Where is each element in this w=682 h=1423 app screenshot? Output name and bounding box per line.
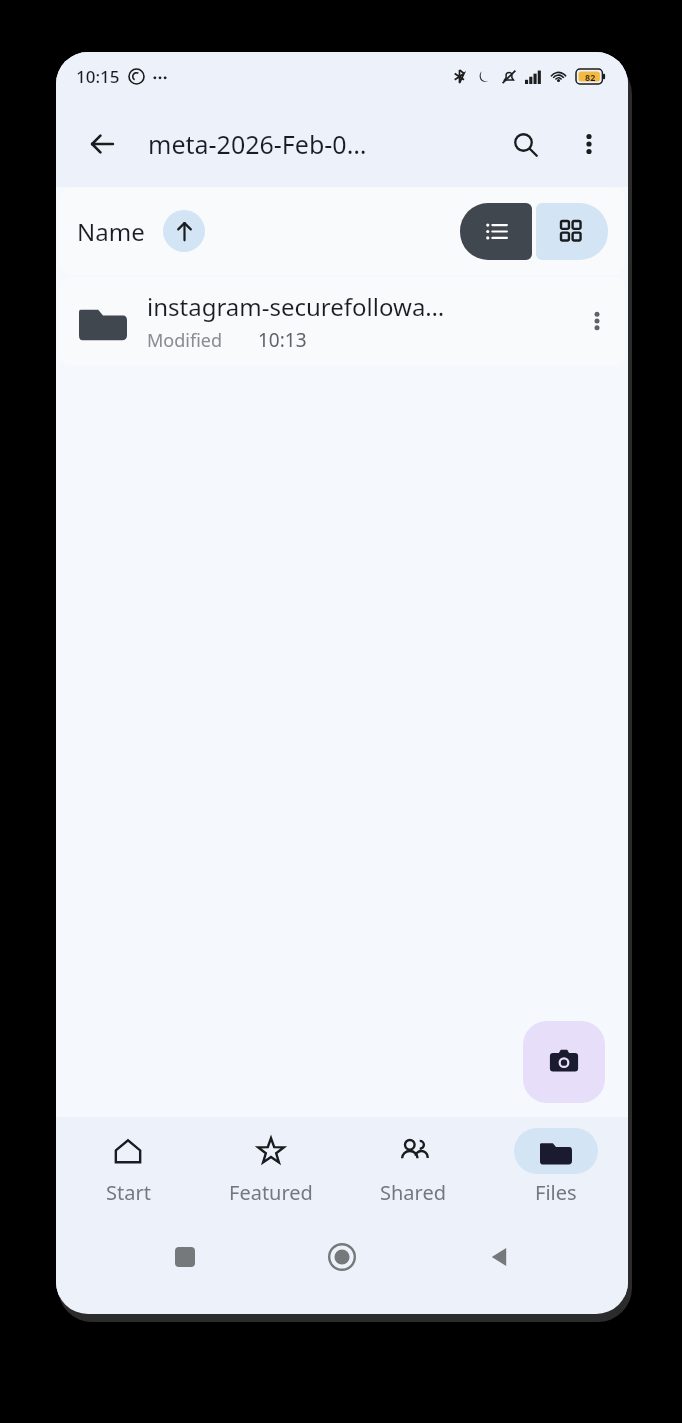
button[interactable]: Home [314, 1229, 370, 1285]
staticText: 10:13 [258, 327, 307, 353]
button[interactable]: Name [73, 206, 209, 256]
staticText: Files [535, 1179, 577, 1206]
button[interactable]: More options [564, 119, 614, 169]
button[interactable]: instagram-securefollowa… [59, 277, 625, 365]
button[interactable]: Back [76, 118, 128, 170]
staticText: meta-2026-Feb-0… [148, 127, 367, 161]
button[interactable]: File options [569, 277, 625, 365]
button[interactable]: Recents [157, 1229, 213, 1285]
staticText: 10:15 [76, 65, 120, 88]
button[interactable]: Grid view [536, 203, 608, 260]
button[interactable]: Search [500, 119, 550, 169]
staticText: Shared [380, 1179, 446, 1206]
button[interactable]: Start [57, 1124, 199, 1210]
button[interactable]: Files [485, 1124, 627, 1210]
button[interactable]: Back [471, 1229, 527, 1285]
button[interactable]: List view [460, 203, 532, 260]
staticText: Name [77, 215, 145, 248]
staticText: Featured [229, 1179, 313, 1206]
button[interactable]: Featured [200, 1124, 342, 1210]
staticText: Modified [147, 328, 222, 353]
staticText: instagram-securefollowa… [147, 290, 445, 323]
button[interactable]: Take photo [523, 1021, 605, 1103]
staticText: Start [106, 1179, 151, 1206]
button[interactable]: Add [489, 1125, 605, 1241]
staticText: 82 [585, 71, 596, 83]
button[interactable]: Shared [342, 1124, 484, 1210]
